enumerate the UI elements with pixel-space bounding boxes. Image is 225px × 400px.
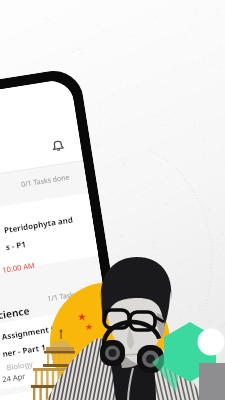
button[interactable]	[0, 307, 109, 399]
button[interactable]	[0, 193, 98, 281]
staticText: Biology	[6, 358, 34, 372]
staticText: Assignment for Graphic	[1, 316, 96, 342]
staticText: Pteridophyta and	[3, 213, 74, 235]
staticText: ner - Part 1	[1, 341, 47, 359]
staticText: 0/1 Tasks done	[20, 172, 70, 190]
staticText: 24 Apr	[2, 371, 27, 384]
staticText: 1/1 Tasks done	[47, 287, 97, 304]
button[interactable]: Notifications	[48, 135, 68, 155]
staticText: s - P1	[5, 238, 27, 252]
staticText: Science	[0, 303, 31, 323]
staticText: 10:00 AM	[1, 260, 36, 275]
